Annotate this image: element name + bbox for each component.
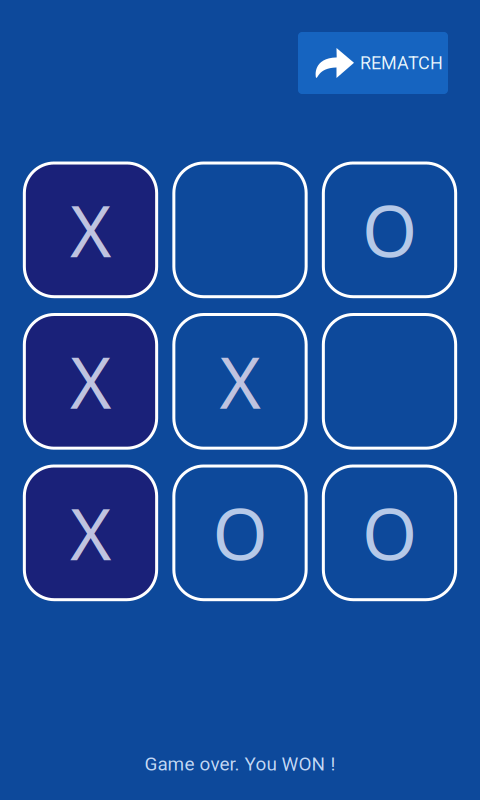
button[interactable]: O [174, 466, 306, 600]
staticText: REMATCH [360, 52, 443, 74]
staticText: X [70, 182, 111, 278]
button[interactable]: X [174, 314, 306, 448]
button[interactable]: X [24, 466, 157, 600]
staticText: O [362, 485, 417, 581]
button[interactable]: O [323, 466, 456, 600]
staticText: Game over. You WON ! [144, 753, 335, 775]
button[interactable]: X [24, 163, 157, 297]
button[interactable] [323, 314, 456, 448]
button[interactable]: X [24, 314, 157, 448]
staticText: X [219, 333, 260, 429]
staticText: X [70, 485, 111, 581]
button[interactable]: REMATCH [298, 32, 448, 94]
button[interactable] [174, 163, 306, 297]
staticText: O [362, 182, 417, 278]
staticText: X [70, 333, 111, 429]
button[interactable]: O [323, 163, 456, 297]
staticText: O [212, 485, 267, 581]
